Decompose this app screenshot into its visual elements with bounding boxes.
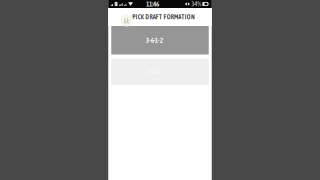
staticText: 3-6-1-2 xyxy=(146,36,163,44)
staticText: 34% xyxy=(191,0,201,8)
button[interactable]: 3-6-1-2 xyxy=(111,26,209,54)
staticText: 11:46 xyxy=(146,0,159,8)
staticText: PICK DRAFT FORMATION xyxy=(132,13,195,21)
